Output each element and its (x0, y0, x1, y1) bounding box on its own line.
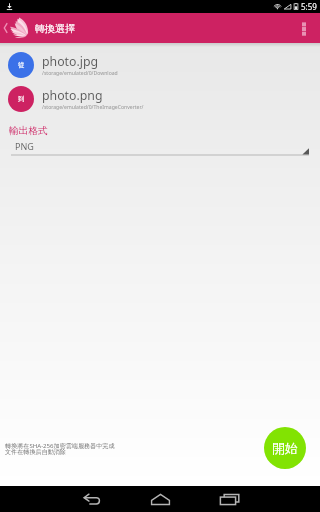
staticText: photo.jpg (42, 53, 99, 70)
button[interactable]: Recents (209, 486, 249, 512)
staticText: 到 (18, 95, 25, 103)
button[interactable]: More options (294, 13, 320, 43)
staticText: 轉換選擇 (35, 22, 75, 35)
staticText: 轉換將在SHA-256加密雲端服務器中完成 文件在轉換后自動消除 (5, 441, 115, 456)
button[interactable]: 從 (0, 52, 320, 78)
staticText: 從 (18, 61, 25, 69)
button[interactable]: 開始 (264, 427, 306, 469)
staticText: 5:59 (301, 1, 317, 12)
staticText: /storage/emulated/0/Download (42, 70, 118, 77)
staticText: photo.png (42, 87, 103, 104)
button[interactable]: 到 (0, 86, 320, 112)
button[interactable]: Back (72, 486, 112, 512)
staticText: PNG (15, 140, 34, 152)
staticText: 開始 (272, 440, 298, 456)
button[interactable]: Back (0, 13, 10, 43)
staticText: /storage/emulated/0/TheImageConverter/ (42, 104, 144, 111)
staticText: 輸出格式 (9, 125, 48, 137)
button[interactable]: Home (140, 486, 180, 512)
button[interactable]: PNG (11, 140, 309, 158)
